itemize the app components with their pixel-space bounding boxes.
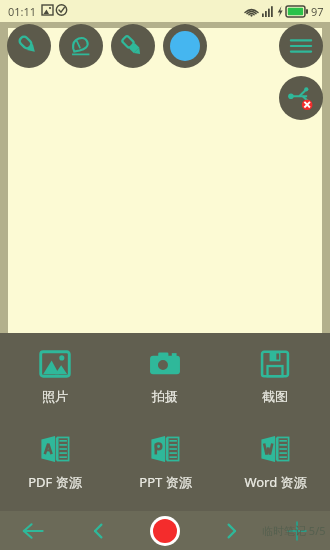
- staticText: 01:11: [8, 4, 37, 19]
- button[interactable]: Record: [132, 511, 198, 550]
- button[interactable]: 截图: [220, 343, 330, 408]
- button[interactable]: Colour blue: [163, 24, 207, 68]
- button[interactable]: Word 资源: [220, 428, 330, 495]
- button[interactable]: Highlighter width 07: [111, 24, 155, 68]
- staticText: 97: [311, 4, 324, 19]
- button[interactable]: 照片: [0, 343, 110, 408]
- button[interactable]: Pen: [7, 24, 51, 68]
- staticText: 拍摄: [152, 388, 178, 404]
- staticText: PPT 资源: [139, 473, 192, 491]
- staticText: PDF 资源: [28, 473, 82, 491]
- button[interactable]: Menu: [279, 24, 323, 68]
- staticText: 照片: [42, 388, 68, 404]
- button[interactable]: Eraser: [59, 24, 103, 68]
- button[interactable]: 拍摄: [110, 343, 220, 408]
- button[interactable]: Back: [0, 511, 66, 550]
- button[interactable]: Add page: [264, 511, 330, 550]
- staticText: 截图: [262, 388, 288, 404]
- button[interactable]: Connect device: [279, 76, 323, 120]
- staticText: 临时笔记 5/5: [262, 523, 326, 538]
- button[interactable]: PPT 资源: [110, 428, 220, 495]
- button[interactable]: Previous page: [66, 511, 132, 550]
- button[interactable]: PDF 资源: [0, 428, 110, 495]
- staticText: Word 资源: [244, 473, 307, 491]
- button[interactable]: Next page: [198, 511, 264, 550]
